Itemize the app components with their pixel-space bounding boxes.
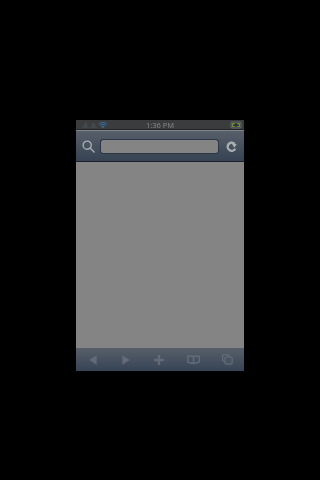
button[interactable]: [100, 139, 219, 154]
button[interactable]: Refresh: [219, 131, 244, 161]
button[interactable]: Bookmarks: [176, 348, 210, 371]
staticText: 1:36 PM: [146, 120, 175, 129]
button[interactable]: Back: [76, 348, 109, 371]
button[interactable]: Tabs: [210, 348, 244, 371]
button[interactable]: New tab: [142, 348, 176, 371]
button[interactable]: Search: [76, 131, 100, 161]
button[interactable]: Forward: [109, 348, 142, 371]
